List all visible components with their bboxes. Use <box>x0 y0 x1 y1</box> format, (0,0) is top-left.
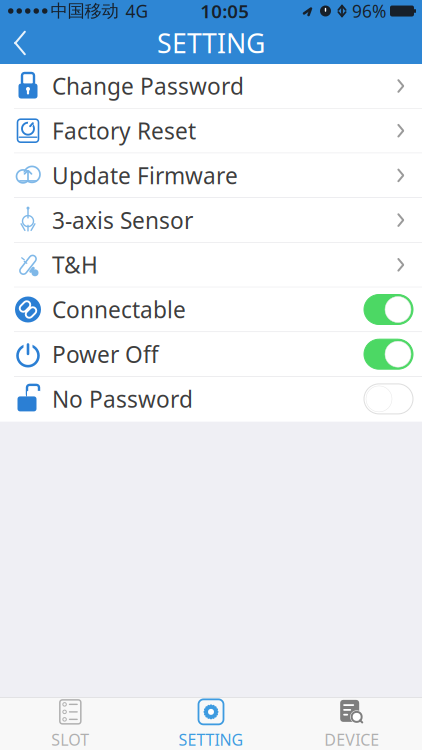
staticText: Update Firmware <box>52 160 238 190</box>
button[interactable]: Factory Reset <box>0 109 422 153</box>
staticText: 中国移动 <box>50 0 118 22</box>
staticText: 3-axis Sensor <box>52 205 193 235</box>
button[interactable]: 3-axis Sensor <box>0 198 422 243</box>
button[interactable]: No Password <box>0 377 422 422</box>
staticText: No Password <box>52 384 193 414</box>
staticText: 10:05 <box>200 0 249 23</box>
staticText: DEVICE <box>324 729 379 750</box>
staticText: SLOT <box>51 729 89 750</box>
button[interactable]: Back <box>0 22 40 64</box>
staticText: SETTING <box>157 25 265 61</box>
staticText: Connectable <box>52 294 186 324</box>
button[interactable]: T&H <box>0 243 422 287</box>
button[interactable]: SETTING <box>141 692 281 750</box>
staticText: 96% <box>352 0 386 22</box>
staticText: T&H <box>52 250 98 280</box>
staticText: 4G <box>125 0 148 22</box>
staticText: Factory Reset <box>52 116 196 146</box>
button[interactable]: Update Firmware <box>0 153 422 198</box>
button[interactable]: Connectable <box>0 287 422 332</box>
staticText: Power Off <box>52 339 159 369</box>
staticText: Change Password <box>52 71 244 101</box>
button[interactable]: Change Password <box>0 64 422 109</box>
staticText: SETTING <box>178 729 243 750</box>
button[interactable]: SLOT <box>0 692 141 750</box>
button[interactable]: Power Off <box>0 332 422 377</box>
button[interactable]: DEVICE <box>281 692 422 750</box>
